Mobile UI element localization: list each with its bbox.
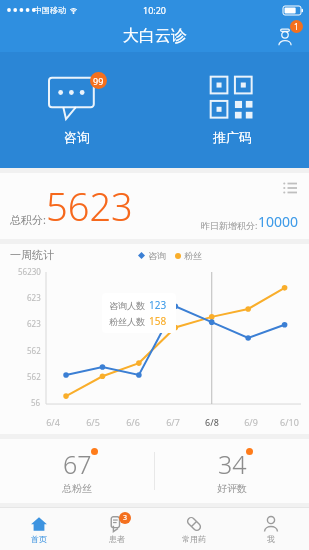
staticText: 6/8 [205,416,219,428]
staticText: 623 [27,318,41,329]
staticText: 我 [267,534,275,544]
staticText: 67 [63,447,92,481]
staticText: 562 [27,371,41,382]
staticText: 推广码 [213,129,252,145]
staticText: 昨日新增积分: [201,219,258,231]
staticText: 562 [27,345,41,356]
staticText: 623 [27,292,41,303]
staticText: 总粉丝 [62,482,92,495]
staticText: 常用药 [182,534,206,544]
staticText: 6/6 [126,416,140,428]
staticText: 粉丝 [184,250,202,261]
staticText: 99 [93,75,104,87]
staticText: 总积分: [10,212,46,227]
staticText: 一周统计 [10,248,54,262]
button[interactable]: 3 [78,508,155,550]
staticText: 3 [123,513,128,523]
staticText: 咨询 [64,129,90,145]
staticText: 1 [294,21,299,32]
staticText: 6/9 [244,416,258,428]
staticText: 123 [149,298,167,312]
staticText: 首页 [31,534,47,544]
staticText: 粉丝人数 [109,316,145,327]
staticText: 10000 [258,212,299,231]
staticText: 患者 [109,534,125,544]
button[interactable]: 总积分: [0,173,309,239]
staticText: 6/4 [46,416,60,428]
button[interactable]: 常用药 [155,508,232,550]
button[interactable]: 推广码 [154,52,309,168]
button[interactable]: 我 [232,508,309,550]
button[interactable]: 99 [0,52,154,168]
button[interactable]: 67 [0,439,154,503]
staticText: 6/10 [280,416,299,428]
staticText: 好评数 [217,482,247,495]
staticText: 34 [218,447,247,481]
button[interactable]: Points detail list [279,177,301,199]
staticText: 158 [149,314,167,328]
staticText: 咨询人数 [109,300,145,311]
staticText: 56 [31,397,41,408]
staticText: 咨询 [148,250,166,261]
staticText: 5623 [46,180,133,232]
staticText: 大白云诊 [123,26,187,46]
staticText: 中国移动 [34,5,66,15]
button[interactable]: 34 [155,439,309,503]
staticText: 56230 [18,266,41,277]
staticText: 6/5 [86,416,100,428]
button[interactable]: Doctor profile [271,21,301,51]
staticText: 10:20 [143,4,167,16]
staticText: 6/7 [166,416,180,428]
button[interactable]: 首页 [0,508,78,550]
